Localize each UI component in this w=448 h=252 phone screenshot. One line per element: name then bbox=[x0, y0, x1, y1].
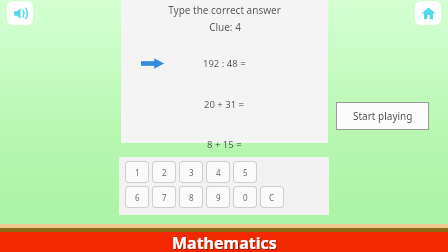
button[interactable]: Home bbox=[415, 1, 441, 25]
staticText: 1 bbox=[135, 167, 140, 178]
staticText: 5 bbox=[243, 167, 248, 178]
staticText: 7 bbox=[162, 192, 167, 203]
button[interactable]: 2 bbox=[153, 162, 175, 182]
staticText: Start playing bbox=[353, 109, 413, 123]
button[interactable]: 3 bbox=[180, 162, 202, 182]
staticText: 0 bbox=[243, 192, 248, 203]
staticText: 3 bbox=[189, 167, 194, 178]
button[interactable]: 1 bbox=[126, 162, 148, 182]
button[interactable]: 4 bbox=[207, 162, 229, 182]
button[interactable]: Sound bbox=[7, 1, 33, 25]
button[interactable]: C bbox=[261, 187, 283, 207]
button[interactable]: Start playing bbox=[337, 103, 428, 129]
button[interactable]: 6 bbox=[126, 187, 148, 207]
staticText: Mathematics bbox=[173, 233, 278, 252]
button[interactable]: 7 bbox=[153, 187, 175, 207]
button[interactable]: 5 bbox=[234, 162, 256, 182]
staticText: Clue: 4 bbox=[209, 20, 241, 34]
button[interactable]: 8 bbox=[180, 187, 202, 207]
staticText: 2 bbox=[162, 167, 167, 178]
staticText: 8 bbox=[189, 192, 194, 203]
staticText: C bbox=[269, 192, 275, 203]
staticText: Mathematics bbox=[172, 232, 277, 252]
button[interactable]: 0 bbox=[234, 187, 256, 207]
staticText: 8 + 15 = bbox=[207, 138, 242, 151]
staticText: 20 + 31 = bbox=[204, 98, 245, 111]
button[interactable]: 9 bbox=[207, 187, 229, 207]
staticText: 192 : 48 = bbox=[203, 57, 246, 70]
staticText: 4 bbox=[216, 167, 221, 178]
staticText: Type the correct answer bbox=[168, 3, 281, 17]
staticText: 9 bbox=[216, 192, 221, 203]
staticText: 6 bbox=[135, 192, 140, 203]
